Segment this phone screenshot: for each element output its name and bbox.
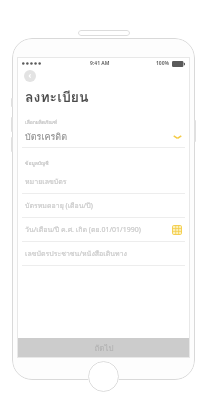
- staticText: บัตรหมดอายุ (เดือน/ปี): [25, 200, 93, 211]
- staticText: 9:41 AM: [90, 60, 110, 67]
- button[interactable]: Back: [24, 70, 36, 82]
- button[interactable]: บัตรเครดิต: [17, 126, 190, 147]
- staticText: เลขบัตรประชาชน/หนังสือเดินทาง: [25, 248, 127, 259]
- staticText: เลือกผลิตภัณฑ์: [25, 118, 58, 126]
- button[interactable]: หมายเลขบัตร: [17, 170, 190, 193]
- staticText: 100%: [156, 60, 170, 67]
- staticText: หมายเลขบัตร: [25, 176, 67, 187]
- other: Pick date: [172, 225, 182, 235]
- staticText: ข้อมูลบัญชี: [25, 159, 49, 167]
- staticText: ถัดไป: [94, 342, 114, 355]
- button[interactable]: วัน/เดือน/ปี ค.ศ. เกิด (ตย.01/01/1990): [17, 218, 190, 241]
- other: Expand: [173, 134, 182, 140]
- staticText: วัน/เดือน/ปี ค.ศ. เกิด (ตย.01/01/1990): [25, 224, 141, 235]
- button[interactable]: Home: [88, 361, 119, 392]
- staticText: ลงทะเบียน: [25, 86, 89, 108]
- button[interactable]: บัตรหมดอายุ (เดือน/ปี): [17, 194, 190, 217]
- button[interactable]: ถัดไป: [17, 338, 190, 358]
- staticText: บัตรเครดิต: [25, 130, 68, 144]
- button[interactable]: เลขบัตรประชาชน/หนังสือเดินทาง: [17, 242, 190, 265]
